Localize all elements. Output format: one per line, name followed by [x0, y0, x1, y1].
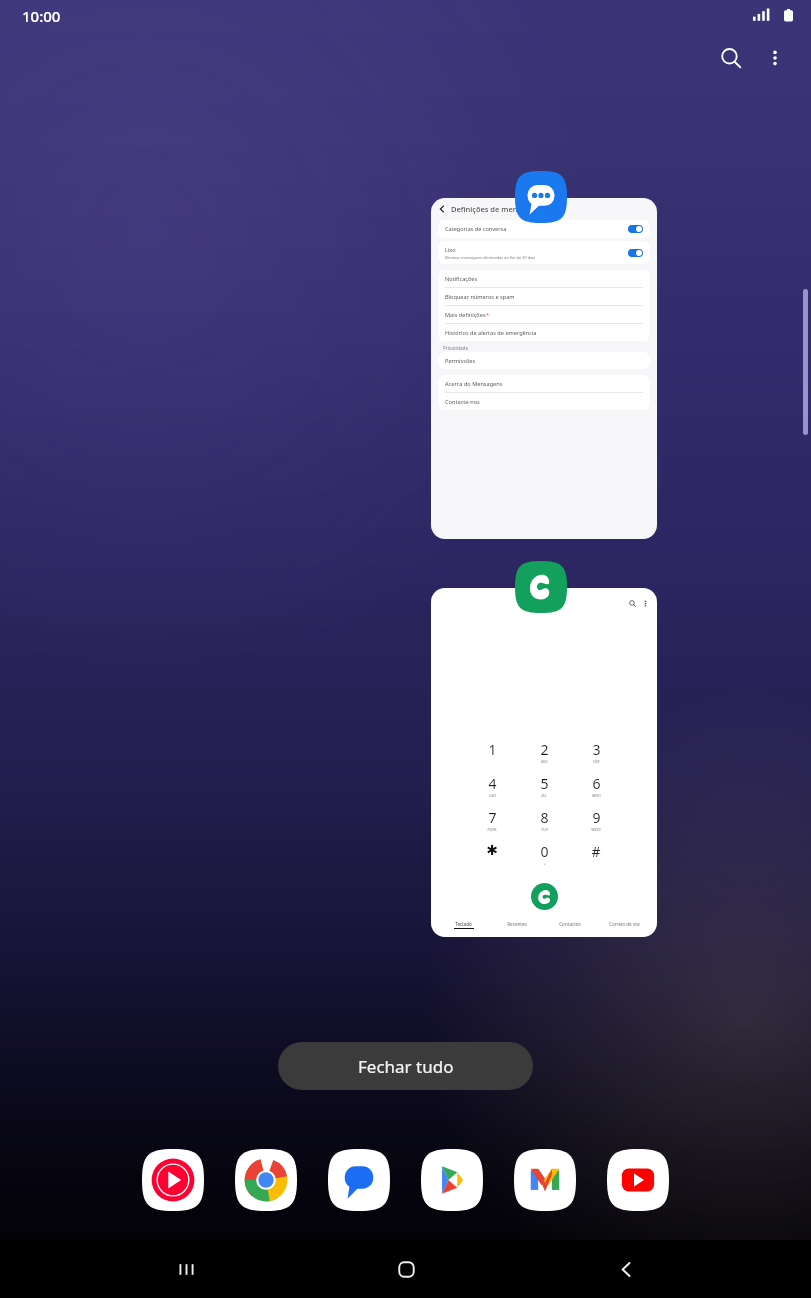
- staticText: JKL: [541, 793, 547, 798]
- staticText: WXYZ: [591, 827, 601, 832]
- staticText: TUV: [541, 827, 548, 832]
- staticText: 1: [488, 740, 497, 759]
- staticText: Fechar tudo: [358, 1055, 454, 1078]
- button[interactable]: More options: [753, 36, 797, 80]
- staticText: GHI: [489, 793, 496, 798]
- button[interactable]: 8: [527, 808, 561, 842]
- staticText: Acerca do Mensagens: [445, 380, 503, 388]
- button[interactable]: Contacte-nos: [438, 393, 650, 410]
- button[interactable]: Notificações: [438, 270, 650, 288]
- staticText: 6: [592, 774, 601, 793]
- staticText: PQRS: [487, 827, 497, 832]
- button[interactable]: Histórico de alertas de emergência: [438, 324, 650, 341]
- button[interactable]: Permissões: [438, 352, 650, 369]
- button[interactable]: Chrome: [231, 1145, 301, 1215]
- button[interactable]: Play Store: [417, 1145, 487, 1215]
- staticText: Teclado: [455, 921, 472, 927]
- button[interactable]: Contactos: [543, 921, 597, 927]
- staticText: MNO: [592, 793, 601, 798]
- button[interactable]: Fechar tudo: [278, 1042, 533, 1090]
- staticText: 5: [540, 774, 549, 793]
- button[interactable]: ✱: [475, 842, 509, 876]
- button[interactable]: 7: [475, 808, 509, 842]
- staticText: ABC: [541, 759, 548, 764]
- button[interactable]: Acerca do Mensagens: [438, 375, 650, 393]
- staticText: 0: [540, 842, 549, 861]
- button[interactable]: Correio de voz: [597, 921, 651, 927]
- staticText: 4: [488, 774, 497, 793]
- staticText: Categorias de conversa: [445, 225, 507, 233]
- staticText: Definições de mensagens: [451, 204, 543, 214]
- button[interactable]: Bloquear números e spam: [438, 288, 650, 306]
- button[interactable]: #: [579, 842, 613, 876]
- staticText: Contacte-nos: [445, 398, 480, 406]
- staticText: *: [486, 311, 490, 319]
- staticText: Privacidade: [443, 345, 468, 351]
- staticText: Eliminar mensagens eliminadas ao fim de …: [445, 255, 536, 260]
- button[interactable]: Search: [709, 36, 753, 80]
- button[interactable]: 0: [527, 842, 561, 876]
- button[interactable]: 6: [579, 774, 613, 808]
- button[interactable]: Lixo: [445, 241, 643, 264]
- staticText: ✱: [486, 842, 498, 858]
- button[interactable]: Phone: [515, 561, 567, 613]
- button[interactable]: 4: [475, 774, 509, 808]
- staticText: Permissões: [445, 357, 476, 365]
- button[interactable]: YouTube: [603, 1145, 673, 1215]
- button[interactable]: 5: [527, 774, 561, 808]
- button[interactable]: Messages: [324, 1145, 394, 1215]
- staticText: Notificações: [445, 275, 478, 283]
- staticText: 8: [540, 808, 549, 827]
- staticText: Lixo: [445, 246, 456, 254]
- staticText: DEF: [593, 759, 600, 764]
- staticText: 2: [540, 740, 549, 759]
- button[interactable]: Recent apps: [151, 1240, 221, 1298]
- staticText: Correio de voz: [609, 921, 640, 927]
- button[interactable]: 9: [579, 808, 613, 842]
- button[interactable]: Teclado: [437, 921, 490, 929]
- button[interactable]: Messages: [515, 171, 567, 223]
- staticText: 3: [592, 740, 601, 759]
- staticText: Mais definições: [445, 311, 486, 319]
- staticText: Contactos: [559, 921, 581, 927]
- button[interactable]: Categorias de conversa: [445, 220, 643, 238]
- staticText: Histórico de alertas de emergência: [445, 329, 537, 337]
- staticText: 10:00: [22, 6, 61, 26]
- button[interactable]: YouTube Music: [138, 1145, 208, 1215]
- button[interactable]: Mais definições: [438, 306, 650, 324]
- button[interactable]: Definições de mensagens: [431, 198, 657, 539]
- button[interactable]: 2: [527, 740, 561, 774]
- button[interactable]: 1: [475, 740, 509, 774]
- button[interactable]: 1: [431, 588, 657, 937]
- button[interactable]: Back: [591, 1240, 661, 1298]
- staticText: Bloquear números e spam: [445, 293, 515, 301]
- staticText: 9: [592, 808, 601, 827]
- button[interactable]: Gmail: [510, 1145, 580, 1215]
- staticText: 7: [488, 808, 497, 827]
- button[interactable]: Home: [371, 1240, 441, 1298]
- button[interactable]: 3: [579, 740, 613, 774]
- button[interactable]: Call: [531, 883, 558, 910]
- staticText: +: [543, 861, 546, 866]
- staticText: Recentes: [507, 921, 527, 927]
- button[interactable]: Recentes: [490, 921, 543, 927]
- staticText: #: [591, 842, 601, 861]
